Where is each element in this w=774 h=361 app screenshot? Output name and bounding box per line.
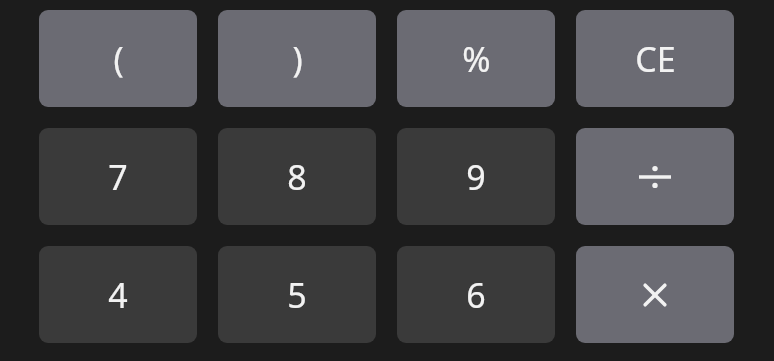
button[interactable]: ) — [218, 10, 376, 107]
button[interactable]: CE — [576, 10, 734, 107]
button[interactable]: Divide — [576, 128, 734, 225]
button[interactable]: 8 — [218, 128, 376, 225]
button[interactable]: Multiply — [576, 246, 734, 343]
staticText: 5 — [287, 272, 307, 318]
staticText: 9 — [466, 154, 486, 200]
staticText: 6 — [466, 272, 486, 318]
button[interactable]: 4 — [39, 246, 197, 343]
button[interactable]: 6 — [397, 246, 555, 343]
staticText: ) — [292, 36, 303, 82]
staticText: 7 — [108, 154, 128, 200]
staticText: 8 — [287, 154, 307, 200]
button[interactable]: 7 — [39, 128, 197, 225]
staticText: 4 — [108, 272, 128, 318]
staticText: ( — [113, 36, 124, 82]
button[interactable]: 9 — [397, 128, 555, 225]
button[interactable]: 5 — [218, 246, 376, 343]
button[interactable]: % — [397, 10, 555, 107]
staticText: % — [462, 36, 491, 82]
staticText: CE — [635, 36, 676, 82]
button[interactable]: ( — [39, 10, 197, 107]
